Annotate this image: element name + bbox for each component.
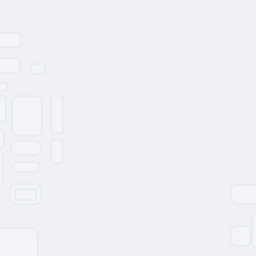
button[interactable]: Card (10, 184, 41, 204)
button[interactable]: Avatar (0, 130, 4, 148)
button[interactable]: Sent message (231, 226, 251, 246)
button[interactable]: Message bubble (0, 33, 21, 47)
button[interactable]: Sent message (231, 185, 256, 204)
button[interactable]: Avatar (252, 214, 256, 248)
button[interactable]: Card content (15, 189, 36, 200)
button[interactable]: Message bubble (11, 141, 41, 155)
button[interactable]: Avatar (0, 96, 6, 122)
button[interactable]: Timestamp (0, 83, 7, 91)
button[interactable]: Reaction (31, 64, 45, 74)
button[interactable]: Message bubble (0, 58, 20, 73)
button[interactable]: Message bubble (13, 162, 40, 172)
button[interactable]: Detail (51, 96, 63, 133)
button[interactable]: Avatar (0, 152, 3, 186)
button[interactable]: Detail (51, 140, 63, 163)
